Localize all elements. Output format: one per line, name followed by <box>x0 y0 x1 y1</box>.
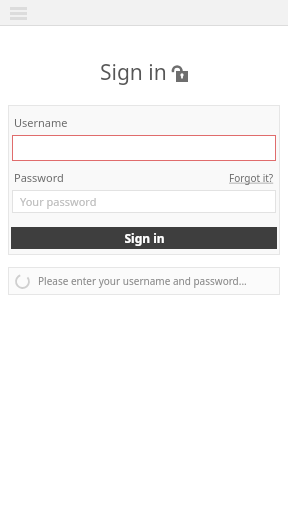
staticText: Please enter your username and password.… <box>38 274 247 288</box>
staticText: Username <box>14 115 68 130</box>
button[interactable]: Forgot it? <box>229 171 274 185</box>
button[interactable]: Menu <box>6 1 30 25</box>
button[interactable]: Sign in <box>11 227 277 249</box>
staticText: Forgot it? <box>229 171 274 185</box>
staticText: Sign in <box>124 230 165 246</box>
button[interactable]: Your password <box>12 190 276 213</box>
staticText: Your password <box>20 194 97 209</box>
button[interactable]: Username field <box>12 135 276 161</box>
staticText: Password <box>14 170 64 185</box>
staticText: Sign in <box>100 58 167 87</box>
